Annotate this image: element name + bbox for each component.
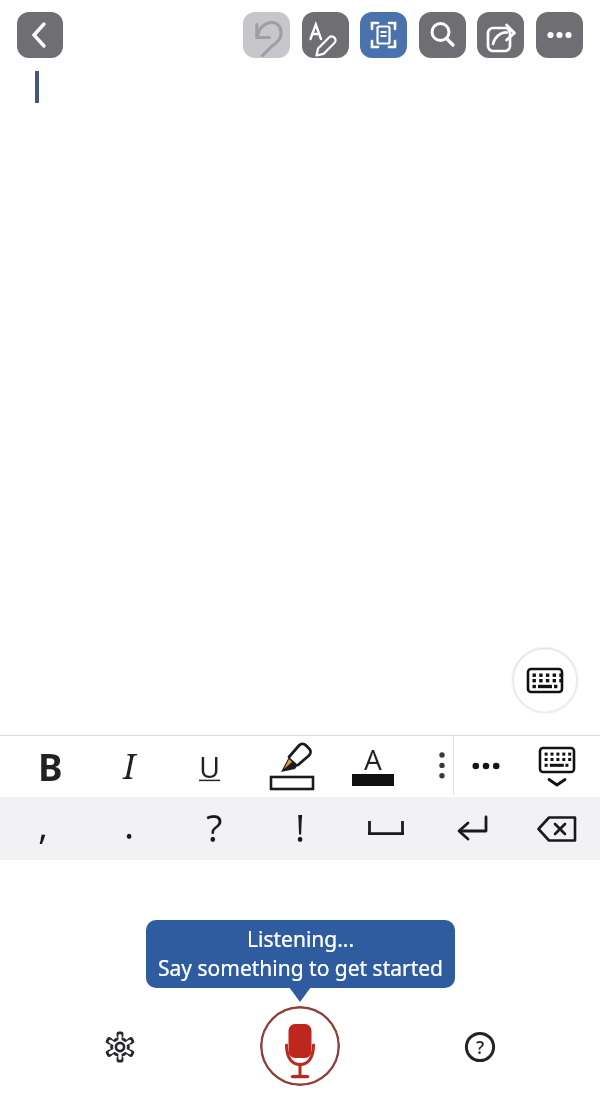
- button[interactable]: A: [339, 735, 407, 797]
- staticText: ,: [38, 798, 49, 850]
- button[interactable]: B: [16, 735, 84, 797]
- button[interactable]: [243, 12, 290, 58]
- button[interactable]: [429, 797, 515, 860]
- staticText: Say something to get started: [158, 954, 444, 983]
- button[interactable]: [524, 735, 590, 797]
- button[interactable]: [17, 12, 63, 58]
- button[interactable]: ?: [171, 797, 257, 860]
- button[interactable]: [260, 1006, 340, 1086]
- button[interactable]: [514, 797, 600, 860]
- button[interactable]: [462, 735, 510, 797]
- staticText: A: [364, 740, 382, 778]
- button[interactable]: U: [176, 735, 244, 797]
- button[interactable]: I: [95, 735, 163, 797]
- staticText: ?: [476, 1035, 485, 1060]
- button[interactable]: ?: [460, 1027, 500, 1067]
- staticText: ?: [206, 801, 223, 853]
- button[interactable]: [100, 1027, 140, 1067]
- button[interactable]: [420, 735, 464, 797]
- staticText: U: [199, 747, 221, 786]
- staticText: B: [38, 741, 63, 791]
- button[interactable]: [258, 735, 326, 797]
- button[interactable]: [477, 12, 524, 58]
- button[interactable]: [419, 12, 466, 58]
- button[interactable]: .: [86, 797, 172, 860]
- staticText: Listening...: [247, 925, 355, 954]
- button[interactable]: [343, 797, 429, 860]
- button[interactable]: [302, 12, 349, 58]
- button[interactable]: ,: [0, 797, 86, 860]
- staticText: .: [124, 798, 135, 850]
- button[interactable]: !: [257, 797, 343, 860]
- button[interactable]: [511, 646, 579, 714]
- button[interactable]: [536, 12, 583, 58]
- button[interactable]: [360, 12, 407, 58]
- staticText: !: [295, 801, 306, 853]
- staticText: I: [123, 743, 136, 789]
